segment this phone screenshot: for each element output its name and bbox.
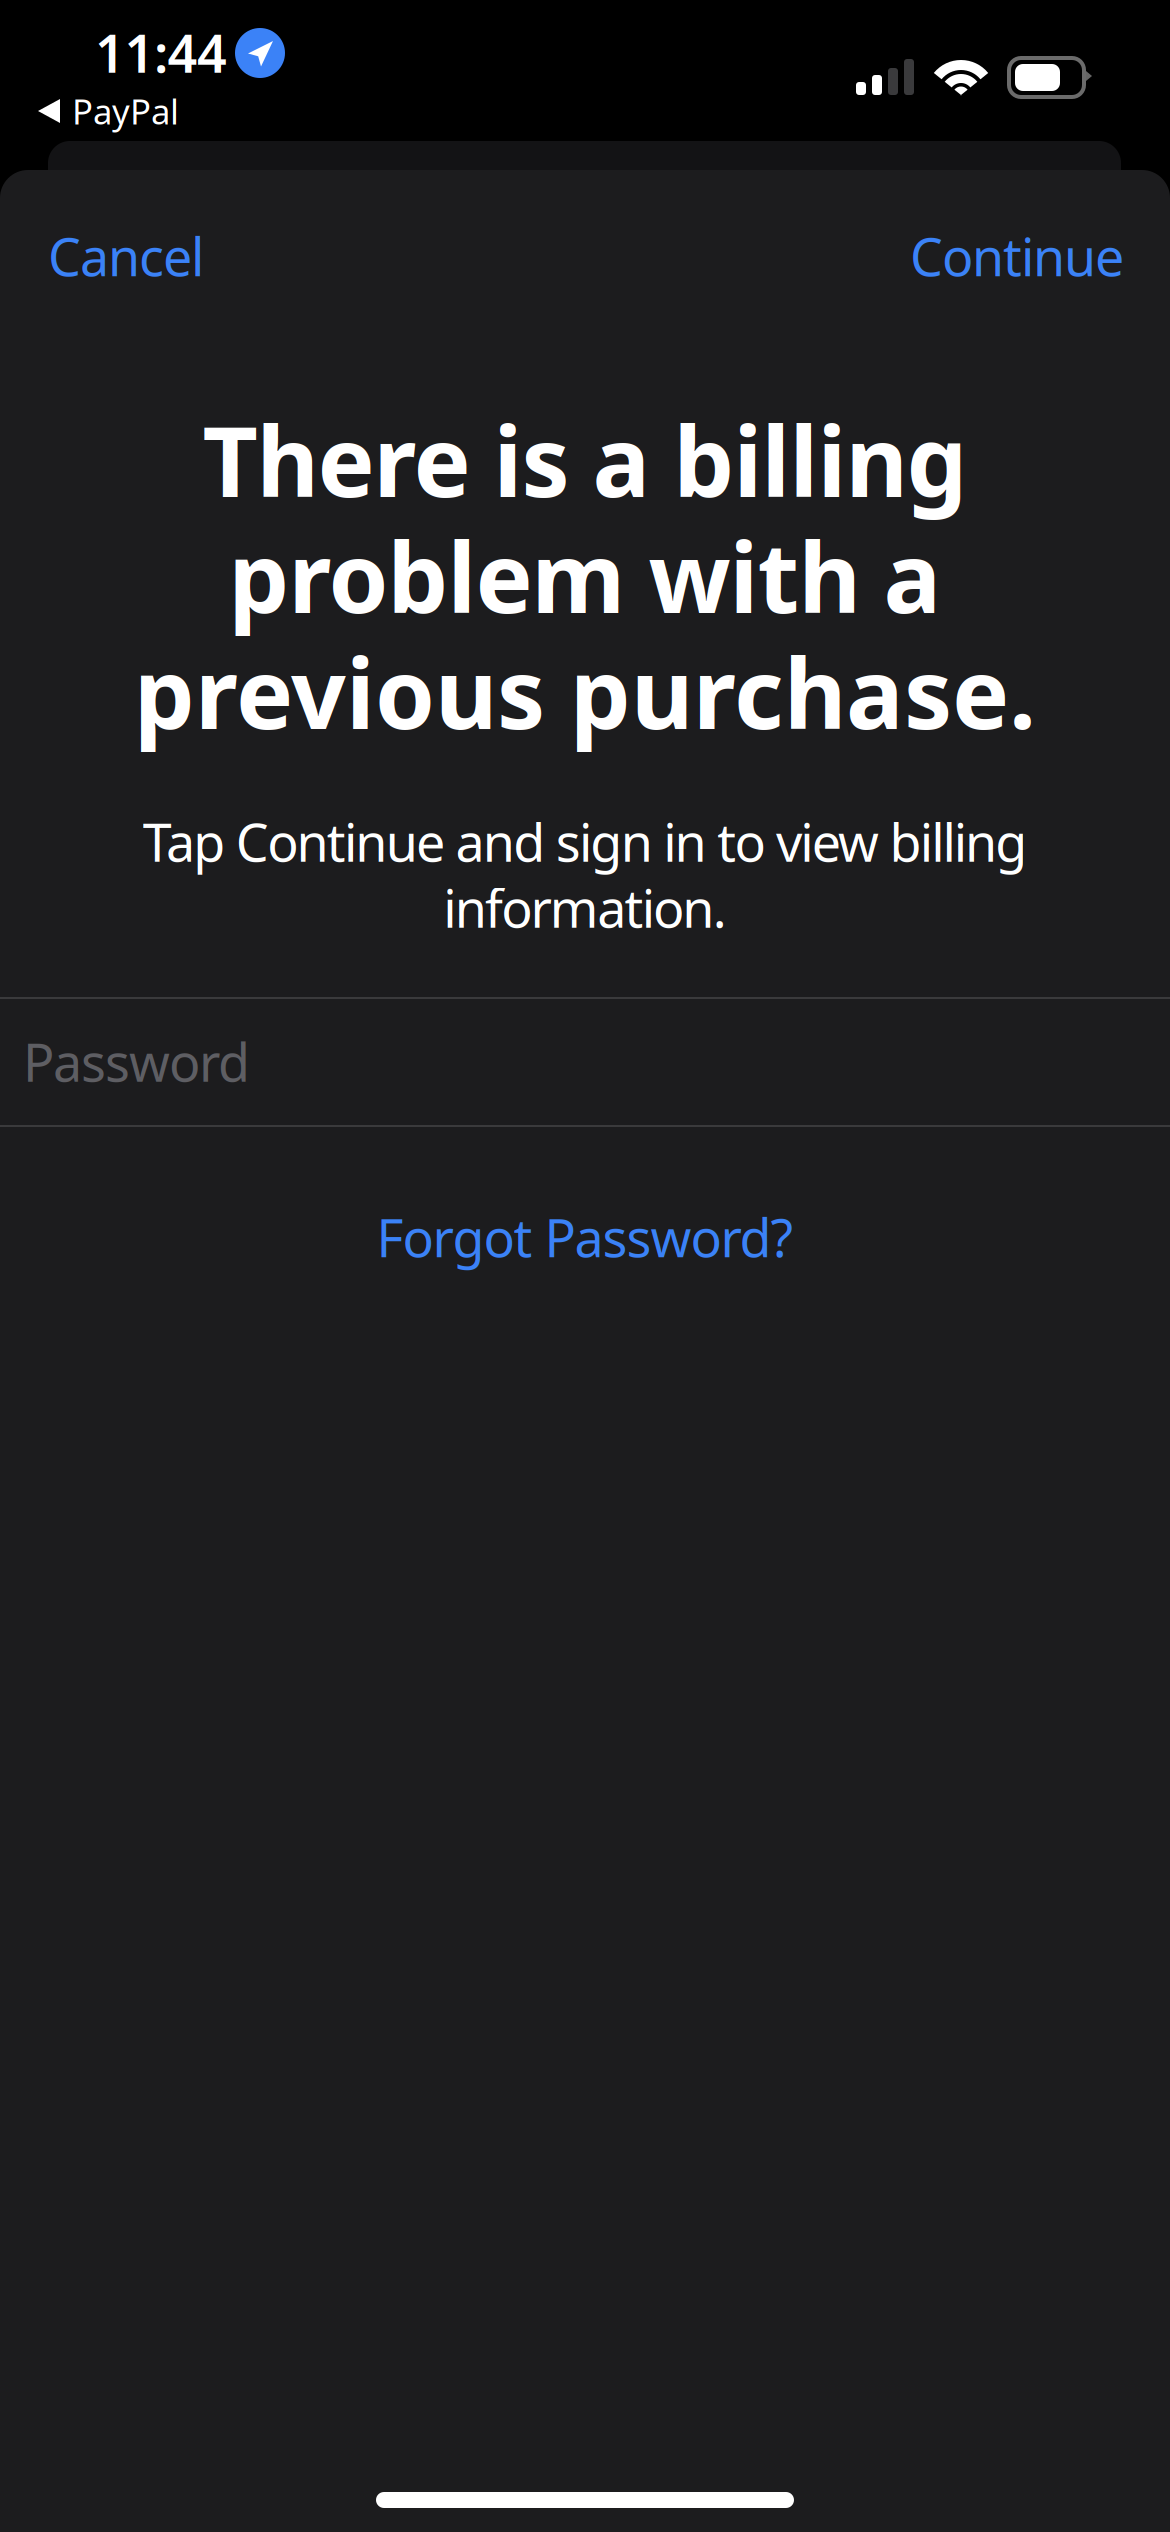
staticText: problem with a [228,512,941,639]
button[interactable]: Password [0,997,1170,1127]
staticText: Password [23,1027,250,1096]
staticText: Tap Continue and sign in to view billing [143,807,1027,876]
button[interactable]: Cancel [12,194,262,318]
staticText: PayPal [72,88,179,134]
staticText: Forgot Password? [376,1202,793,1272]
staticText: previous purchase. [134,628,1036,755]
staticText: 11:44 [95,18,227,87]
button[interactable]: Continue [870,194,1170,318]
staticText: Continue [910,221,1124,291]
staticText: There is a billing [202,396,967,523]
staticText: Cancel [48,221,204,291]
staticText: information. [443,873,727,942]
button[interactable]: Forgot Password? [325,1182,845,1292]
